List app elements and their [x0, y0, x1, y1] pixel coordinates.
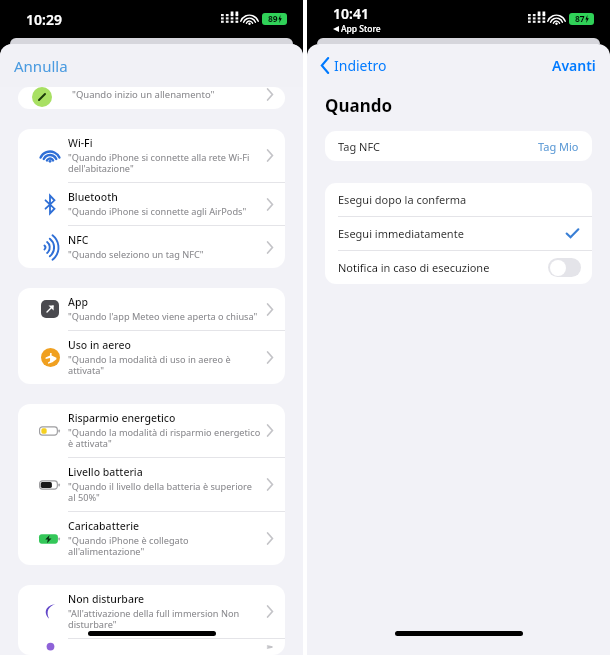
button[interactable]: Esegui dopo la conferma: [325, 183, 592, 216]
button[interactable]: App: [18, 288, 285, 330]
staticText: App: [68, 295, 88, 309]
staticText: "All'attivazione della full immersion No…: [68, 607, 261, 631]
button[interactable]: Caricabatterie: [18, 512, 285, 565]
button[interactable]: Livello batteria: [18, 458, 285, 511]
button[interactable]: Bluetooth: [18, 183, 285, 225]
staticText: App Store: [341, 23, 381, 35]
button[interactable]: Notifica in caso di esecuzione: [548, 258, 581, 277]
button[interactable]: Notifica in caso di esecuzione: [325, 251, 592, 284]
staticText: Tag Mio: [538, 139, 579, 154]
staticText: 87: [575, 13, 585, 25]
staticText: Tag NFC: [338, 139, 381, 154]
button[interactable]: Uso in aereo: [18, 331, 285, 384]
staticText: Esegui dopo la conferma: [338, 192, 467, 207]
button[interactable]: Annulla: [14, 56, 68, 76]
button[interactable]: Non disturbare: [18, 585, 285, 638]
staticText: Risparmio energetico: [68, 411, 176, 425]
button[interactable]: Tag NFC: [325, 131, 592, 161]
staticText: "Quando iPhone si connette agli AirPods": [68, 205, 247, 218]
staticText: "Quando la modalità di uso in aereo è at…: [68, 353, 261, 377]
staticText: "Quando inizio un allenamento": [72, 88, 215, 101]
button[interactable]: Indietro: [319, 50, 389, 81]
button[interactable]: Avanti: [550, 50, 598, 81]
button[interactable]: NFC: [18, 226, 285, 268]
staticText: Bluetooth: [68, 190, 118, 204]
staticText: Uso in aereo: [68, 338, 131, 352]
staticText: Wi-Fi: [68, 136, 93, 150]
staticText: Livello batteria: [68, 465, 143, 479]
staticText: 89: [268, 13, 278, 25]
button[interactable]: Wi-Fi: [18, 129, 285, 182]
staticText: "Quando la modalità di risparmio energet…: [68, 426, 261, 450]
staticText: Indietro: [334, 56, 387, 75]
staticText: "Quando il livello della batteria è supe…: [68, 480, 261, 504]
staticText: NFC: [68, 233, 89, 247]
staticText: "Quando iPhone è collegato all'alimentaz…: [68, 534, 261, 558]
staticText: "Quando iPhone si connette alla rete Wi-…: [68, 151, 261, 175]
staticText: Caricabatterie: [68, 519, 140, 533]
button[interactable]: Personale: [18, 639, 285, 655]
staticText: Non disturbare: [68, 592, 145, 606]
button[interactable]: Risparmio energetico: [18, 404, 285, 457]
staticText: "Quando seleziono un tag NFC": [68, 248, 204, 261]
button[interactable]: Esegui immediatamente: [325, 217, 592, 250]
staticText: Notifica in caso di esecuzione: [338, 260, 490, 275]
button[interactable]: "Quando inizio un allenamento": [18, 87, 285, 109]
staticText: "Quando l'app Meteo viene aperta o chius…: [68, 310, 258, 323]
staticText: Quando: [325, 94, 393, 117]
staticText: Esegui immediatamente: [338, 226, 464, 241]
staticText: 10:41: [333, 4, 369, 23]
staticText: 10:29: [26, 10, 62, 29]
